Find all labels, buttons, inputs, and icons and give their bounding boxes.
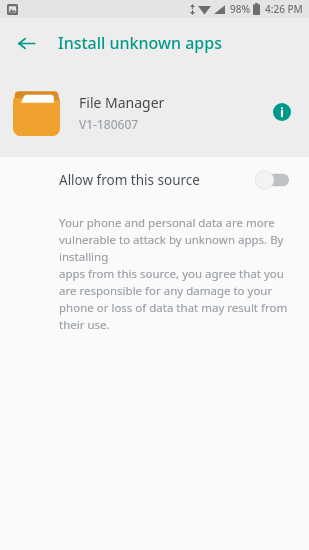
button[interactable]: App info <box>262 92 302 132</box>
staticText: File Manager <box>79 93 165 112</box>
staticText: 98% <box>230 2 250 16</box>
button[interactable]: File Manager <box>0 68 309 156</box>
button[interactable]: Allow from this source <box>0 157 309 203</box>
staticText: Install unknown apps <box>58 32 222 54</box>
staticText: Allow from this source <box>59 171 200 189</box>
staticText: Your phone and personal data are more vu… <box>59 215 297 332</box>
button[interactable]: Back <box>7 24 45 62</box>
staticText: V1-180607 <box>79 116 139 132</box>
staticText: 4:26 PM <box>265 2 303 16</box>
